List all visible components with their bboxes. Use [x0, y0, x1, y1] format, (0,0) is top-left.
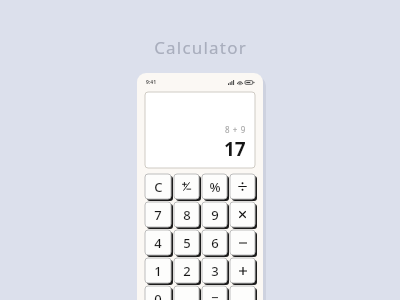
button[interactable]: Percent — [202, 174, 227, 199]
staticText: % — [209, 178, 221, 196]
staticText: 7 — [154, 206, 162, 224]
staticText: 4 — [154, 234, 162, 252]
button[interactable]: 3 — [202, 258, 227, 283]
button[interactable]: 9 — [202, 202, 227, 227]
button[interactable]: 2 — [174, 258, 199, 283]
staticText: 1 — [154, 262, 162, 280]
button[interactable]: Clear — [145, 174, 171, 199]
staticText: 8 + 9 — [225, 124, 246, 135]
button[interactable]: 7 — [145, 202, 171, 227]
button[interactable]: = — [202, 286, 227, 300]
staticText: 2 — [183, 262, 191, 280]
staticText: 8 — [183, 206, 191, 224]
staticText: 6 — [211, 234, 219, 252]
button[interactable]: 0 — [145, 286, 171, 300]
button[interactable]: Minus — [230, 230, 255, 255]
staticText: C — [154, 178, 163, 196]
button[interactable]: Plus — [230, 258, 255, 283]
button[interactable]: 5 — [174, 230, 199, 255]
button[interactable]: . — [174, 286, 199, 300]
button[interactable]: 6 — [202, 230, 227, 255]
staticText: 9 — [211, 206, 219, 224]
button[interactable] — [230, 286, 255, 300]
button[interactable]: 8 — [174, 202, 199, 227]
staticText: 3 — [211, 262, 219, 280]
staticText: 5 — [183, 234, 191, 252]
button[interactable]: 1 — [145, 258, 171, 283]
staticText: 17 — [224, 136, 246, 162]
staticText: 9:41 — [146, 79, 156, 86]
button[interactable]: Divide — [230, 174, 255, 199]
staticText: 0 — [154, 290, 162, 300]
staticText: Calculator — [154, 36, 247, 59]
button[interactable]: Multiply — [230, 202, 255, 227]
staticText: = — [211, 290, 219, 300]
button[interactable]: Plus minus — [174, 174, 199, 199]
button[interactable]: 4 — [145, 230, 171, 255]
